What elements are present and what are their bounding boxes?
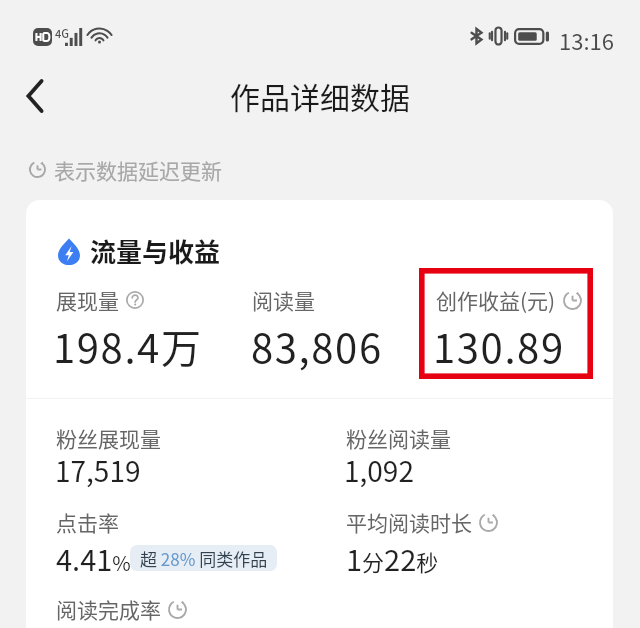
staticText: 流量与收益 bbox=[90, 232, 221, 270]
staticText: 平均阅读时长 bbox=[346, 507, 472, 537]
staticText: 4G bbox=[55, 25, 69, 41]
staticText: 1,092 bbox=[344, 450, 414, 491]
staticText: 粉丝阅读量 bbox=[346, 423, 451, 453]
staticText: 13:16 bbox=[559, 24, 614, 56]
button[interactable]: Back bbox=[3, 64, 67, 128]
staticText: 阅读量 bbox=[252, 285, 315, 315]
staticText: 130.89 bbox=[433, 317, 565, 375]
staticText: 超 28% 同类作品 bbox=[140, 546, 268, 571]
staticText: 83,806 bbox=[251, 317, 383, 375]
staticText: 作品详细数据 bbox=[230, 74, 410, 117]
staticText: 17,519 bbox=[55, 450, 141, 491]
staticText: 创作收益(元) bbox=[436, 285, 556, 315]
staticText: 4.41% bbox=[56, 537, 131, 579]
staticText: 表示数据延迟更新 bbox=[54, 155, 222, 185]
staticText: 点击率 bbox=[56, 507, 119, 537]
staticText: 1分22秒 bbox=[346, 537, 439, 579]
staticText: 198.4万 bbox=[53, 317, 203, 375]
staticText: 阅读完成率 bbox=[56, 594, 161, 624]
staticText: 展现量 bbox=[56, 285, 119, 315]
staticText: 粉丝展现量 bbox=[56, 423, 161, 453]
